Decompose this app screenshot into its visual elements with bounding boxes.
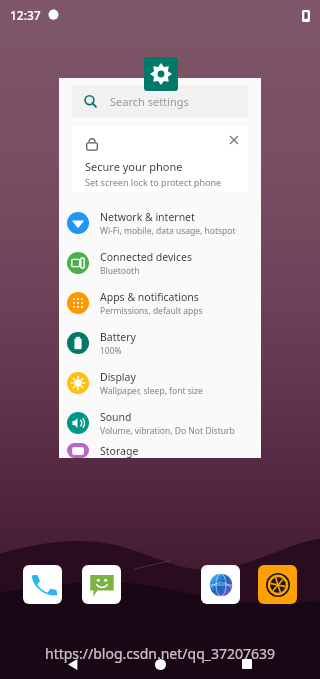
button[interactable]: Back (59, 650, 87, 678)
button[interactable]: Network & internet (59, 203, 261, 243)
button[interactable]: Storage (59, 443, 261, 458)
staticText: Search settings (110, 94, 189, 109)
button[interactable]: Recents (233, 650, 261, 678)
staticText: Sound (100, 410, 132, 424)
button[interactable]: Dismiss (72, 126, 248, 192)
button[interactable]: Home (146, 650, 174, 678)
staticText: Wallpaper, sleep, font size (100, 385, 203, 397)
staticText: Volume, vibration, Do Not Disturb (100, 425, 235, 437)
button[interactable]: Sound (59, 403, 261, 443)
staticText: Wi-Fi, mobile, data usage, hotspot (100, 225, 236, 237)
button[interactable]: Apps & notifications (59, 283, 261, 323)
staticText: https://blog.csdn.net/qq_37207639 (0, 644, 320, 663)
staticText: Storage (100, 444, 139, 458)
staticText: Connected devices (100, 250, 193, 264)
staticText: Secure your phone (85, 159, 183, 174)
staticText: Bluetooth (100, 265, 140, 277)
staticText: Battery (100, 330, 136, 344)
staticText: Apps & notifications (100, 290, 199, 304)
staticText: Set screen lock to protect phone (85, 176, 222, 188)
button[interactable]: Display (59, 363, 261, 403)
button[interactable]: Battery (59, 323, 261, 363)
button[interactable]: Messages (82, 565, 121, 604)
button[interactable]: Dismiss (226, 132, 242, 148)
staticText: Permissions, default apps (100, 305, 203, 317)
staticText: Network & internet (100, 210, 195, 224)
button[interactable]: Browser (201, 565, 240, 604)
button[interactable]: Settings (144, 57, 178, 91)
button[interactable]: Phone (23, 565, 62, 604)
staticText: 100% (100, 345, 122, 357)
button[interactable]: Connected devices (59, 243, 261, 283)
staticText: 12:37 (10, 7, 41, 23)
button[interactable]: Camera (258, 565, 297, 604)
button[interactable]: Search settings (72, 85, 248, 118)
staticText: Display (100, 370, 136, 384)
